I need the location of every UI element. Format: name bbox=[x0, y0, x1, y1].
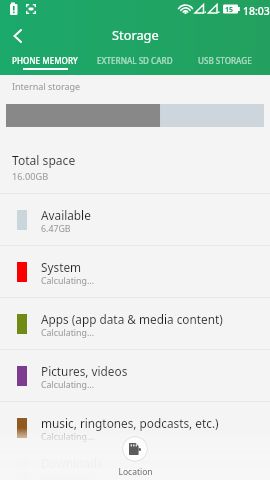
staticText: Total space bbox=[12, 152, 76, 168]
staticText: 18:03 bbox=[243, 4, 270, 18]
staticText: Calculating... bbox=[41, 327, 94, 339]
button[interactable]: USB STORAGE bbox=[180, 50, 270, 75]
staticText: 6.47GB bbox=[41, 223, 71, 235]
staticText: Calculating... bbox=[41, 431, 94, 443]
button[interactable]: Apps (app data & media content) bbox=[0, 298, 270, 349]
staticText: music, ringtones, podcasts, etc.) bbox=[41, 415, 219, 431]
staticText: Calculating... bbox=[41, 275, 94, 287]
staticText: Apps (app data & media content) bbox=[41, 311, 223, 327]
staticText: EXTERNAL SD CARD bbox=[97, 55, 173, 66]
staticText: PHONE MEMORY bbox=[12, 55, 78, 66]
button[interactable]: Back bbox=[0, 18, 32, 50]
button[interactable]: PHONE MEMORY bbox=[0, 50, 90, 75]
staticText: 15 bbox=[225, 5, 234, 15]
button[interactable]: Available bbox=[0, 194, 270, 245]
staticText: Calculating... bbox=[41, 379, 94, 391]
staticText: Available bbox=[41, 207, 91, 223]
button[interactable]: EXTERNAL SD CARD bbox=[90, 50, 180, 75]
staticText: Location bbox=[118, 466, 153, 478]
button[interactable]: Location bbox=[122, 436, 148, 462]
staticText: System bbox=[41, 259, 82, 275]
staticText: Storage bbox=[112, 26, 159, 43]
staticText: Pictures, videos bbox=[41, 363, 128, 379]
button[interactable]: Pictures, videos bbox=[0, 350, 270, 401]
button[interactable]: music, ringtones, podcasts, etc.) bbox=[0, 402, 270, 453]
button[interactable]: Downloads bbox=[0, 454, 270, 480]
staticText: Internal storage bbox=[12, 80, 81, 92]
button[interactable]: System bbox=[0, 246, 270, 297]
staticText: USB STORAGE bbox=[198, 55, 252, 66]
staticText: 16.00GB bbox=[12, 170, 49, 183]
